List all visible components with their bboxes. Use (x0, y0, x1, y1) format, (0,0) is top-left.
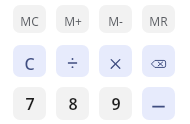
button[interactable]: C (13, 45, 46, 77)
button[interactable]: Multiply (99, 45, 132, 77)
button[interactable]: MR (142, 5, 175, 33)
staticText: M- (108, 13, 123, 29)
button[interactable]: Backspace (142, 45, 175, 77)
button[interactable]: Minus (142, 87, 175, 120)
staticText: M+ (64, 13, 82, 29)
button[interactable]: M- (99, 5, 132, 33)
button[interactable]: M+ (56, 5, 89, 33)
button[interactable]: MC (13, 5, 46, 33)
staticText: C (24, 53, 35, 75)
button[interactable]: Divide (56, 45, 89, 77)
staticText: MR (149, 13, 168, 29)
button[interactable]: 8 (56, 87, 89, 120)
button[interactable]: 7 (13, 87, 46, 120)
staticText: 7 (25, 93, 35, 115)
button[interactable]: 9 (99, 87, 132, 120)
staticText: 8 (68, 93, 78, 115)
staticText: 9 (111, 93, 121, 115)
staticText: MC (20, 13, 39, 29)
